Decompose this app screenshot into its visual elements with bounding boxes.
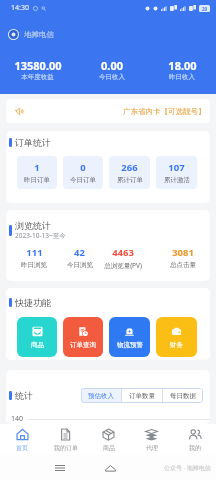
- staticText: 13580.00: [14, 58, 62, 73]
- staticText: 今日收入: [99, 73, 125, 81]
- button[interactable]: 1: [17, 156, 57, 189]
- staticText: 1: [34, 161, 40, 174]
- staticText: 昨日浏览: [21, 261, 47, 269]
- button[interactable]: 0: [63, 156, 103, 189]
- staticText: 订单查询: [70, 341, 96, 349]
- button[interactable]: 商品: [87, 424, 130, 455]
- staticText: 累计激活: [164, 176, 190, 184]
- button[interactable]: 预估收入: [81, 388, 121, 403]
- staticText: 订单数量: [129, 392, 155, 400]
- button[interactable]: 3081: [155, 246, 210, 269]
- staticText: 昨日订单: [24, 176, 50, 184]
- button[interactable]: 商品: [17, 317, 57, 357]
- staticText: 0.00: [101, 58, 123, 73]
- button[interactable]: 订单数量: [122, 388, 162, 403]
- staticText: 代理: [146, 444, 158, 452]
- staticText: 今日浏览: [67, 261, 93, 269]
- button[interactable]: 107: [156, 156, 197, 189]
- staticText: 我的订单: [54, 444, 78, 452]
- staticText: 公众号 · 地摊电信: [164, 464, 211, 472]
- staticText: 111: [26, 246, 43, 259]
- staticText: 商品: [31, 341, 44, 349]
- button[interactable]: 代理: [130, 424, 173, 455]
- button[interactable]: 财务: [156, 317, 197, 357]
- staticText: 浏览统计: [15, 220, 51, 231]
- staticText: 首页: [16, 444, 28, 452]
- staticText: 18.00: [168, 58, 197, 73]
- staticText: 昨日收入: [169, 73, 195, 81]
- staticText: 累计订单: [117, 176, 143, 184]
- staticText: 3081: [172, 246, 194, 259]
- staticText: 广东省内卡【可选靓号】: [123, 107, 206, 116]
- button[interactable]: 我的订单: [44, 424, 87, 455]
- button[interactable]: Recents: [53, 461, 67, 475]
- staticText: 本年度收益: [21, 73, 54, 81]
- staticText: 每日数据: [170, 392, 196, 400]
- button[interactable]: 111: [14, 246, 54, 269]
- button[interactable]: 订单查询: [63, 317, 103, 357]
- button[interactable]: 物流预警: [109, 317, 150, 357]
- button[interactable]: 我的: [173, 424, 216, 455]
- staticText: 0: [80, 161, 86, 174]
- staticText: 统计: [15, 390, 33, 401]
- staticText: 14:30: [11, 3, 29, 13]
- staticText: 总点击量: [170, 261, 196, 269]
- staticText: 物流预警: [117, 341, 143, 349]
- button[interactable]: 每日数据: [163, 388, 203, 403]
- staticText: 地摊电信: [24, 30, 54, 39]
- staticText: 快捷功能: [15, 297, 51, 308]
- button[interactable]: 266: [109, 156, 150, 189]
- staticText: 商品: [103, 444, 115, 452]
- staticText: 20: [202, 6, 208, 12]
- staticText: 预估收入: [88, 392, 114, 400]
- staticText: 我的: [189, 444, 201, 452]
- staticText: 订单统计: [15, 137, 51, 148]
- staticText: 140: [11, 414, 24, 424]
- other: Announcement: [15, 107, 24, 116]
- staticText: 4463: [112, 246, 134, 259]
- staticText: 总浏览量(PV): [104, 261, 142, 270]
- button[interactable]: 42: [54, 246, 105, 269]
- staticText: 2023-10-13~至今: [15, 231, 66, 240]
- button[interactable]: 4463: [98, 246, 148, 270]
- staticText: 42: [74, 246, 85, 259]
- button[interactable]: 首页: [0, 424, 44, 455]
- button[interactable]: Announcement: [6, 99, 210, 123]
- staticText: 财务: [170, 341, 183, 349]
- button[interactable]: Home: [103, 461, 117, 475]
- staticText: 107: [168, 161, 185, 174]
- staticText: 今日订单: [70, 176, 96, 184]
- staticText: 266: [121, 161, 138, 174]
